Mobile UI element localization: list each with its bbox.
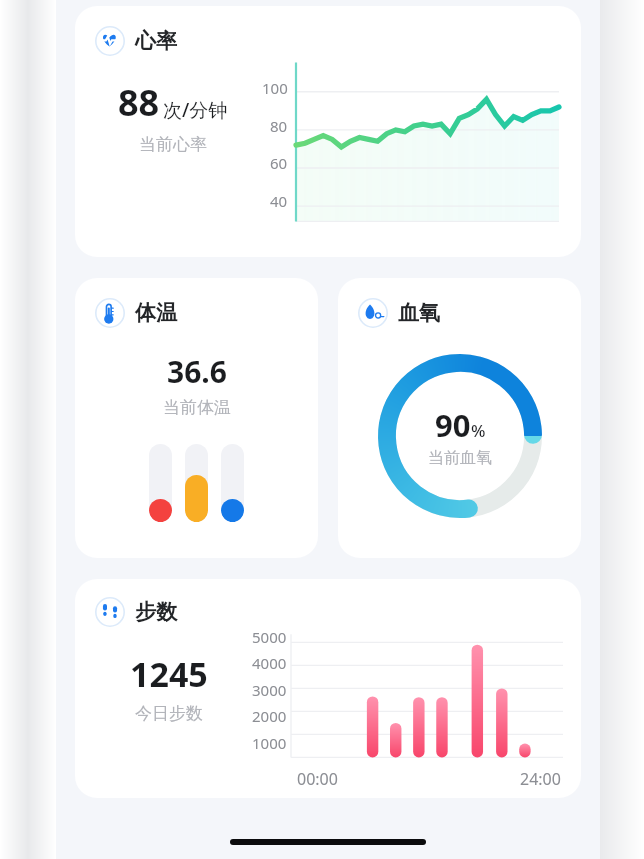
- staticText: 00:00: [297, 768, 338, 790]
- staticText: 次/分钟: [163, 97, 228, 123]
- staticText: 88: [118, 78, 160, 127]
- other: Blood oxygen: [358, 298, 388, 328]
- staticText: 5000: [252, 627, 287, 647]
- staticText: 1245: [130, 651, 208, 697]
- staticText: %: [471, 419, 486, 442]
- staticText: 4000: [252, 653, 287, 673]
- staticText: 24:00: [520, 768, 561, 790]
- staticText: 今日步数: [135, 703, 203, 724]
- staticText: 步数: [135, 599, 177, 625]
- staticText: 1000: [252, 733, 287, 753]
- staticText: 心率: [135, 28, 177, 54]
- staticText: 36.6: [167, 351, 227, 392]
- staticText: 2000: [252, 706, 287, 726]
- staticText: 当前体温: [163, 397, 231, 418]
- staticText: 当前心率: [139, 134, 207, 155]
- button[interactable]: Heart rate: [75, 6, 581, 257]
- staticText: 60: [270, 153, 288, 173]
- staticText: 3000: [252, 680, 287, 700]
- button[interactable]: Body temperature: [75, 278, 318, 558]
- button[interactable]: Steps: [75, 579, 581, 798]
- staticText: 血氧: [398, 300, 440, 326]
- button[interactable]: Blood oxygen: [338, 278, 581, 558]
- staticText: 100: [262, 78, 288, 98]
- staticText: 体温: [135, 300, 177, 326]
- staticText: 80: [270, 116, 288, 136]
- other: Steps: [95, 597, 125, 627]
- other: Heart rate: [95, 26, 125, 56]
- other: Body temperature: [95, 298, 125, 328]
- staticText: 40: [270, 191, 288, 211]
- staticText: 当前血氧: [428, 448, 492, 468]
- staticText: 90: [435, 404, 471, 446]
